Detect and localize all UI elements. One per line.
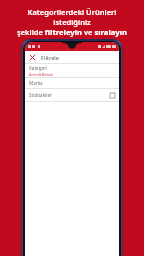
button[interactable]: Kapat <box>25 51 119 63</box>
staticText: Filtrele <box>41 54 59 61</box>
button[interactable]: Marka <box>25 78 119 88</box>
button[interactable]: Kategori <box>25 64 119 77</box>
staticText: Kategorilerdeki Ürünleri istediğiniz şek… <box>8 7 136 37</box>
staticText: Marka <box>29 80 43 86</box>
staticText: Kategori <box>29 65 48 71</box>
staticText: Anne&Bebek <box>29 72 54 77</box>
staticText: Stoktakiler <box>29 92 52 98</box>
button[interactable]: Kapat <box>29 54 36 61</box>
other: Stoktakiler onay kutusu <box>110 93 115 98</box>
button[interactable]: Stoktakiler <box>25 89 119 101</box>
